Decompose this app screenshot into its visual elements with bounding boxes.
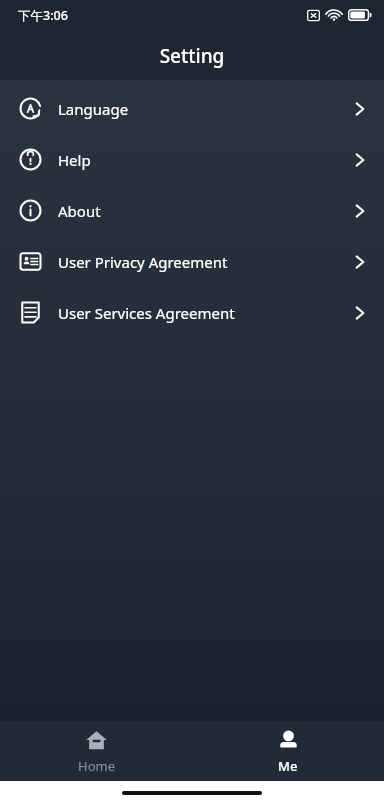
- staticText: User Privacy Agreement: [58, 252, 228, 272]
- staticText: Me: [278, 757, 298, 775]
- button[interactable]: Language: [0, 83, 384, 134]
- other: Me: [277, 729, 300, 752]
- button[interactable]: Help: [0, 134, 384, 185]
- staticText: 下午3:06: [18, 7, 68, 24]
- button[interactable]: User Privacy Agreement: [0, 236, 384, 287]
- button[interactable]: User Services Agreement: [0, 287, 384, 338]
- staticText: Home: [78, 757, 115, 775]
- button[interactable]: Me: [192, 721, 384, 781]
- other: Home: [85, 729, 108, 752]
- staticText: About: [58, 201, 101, 221]
- button[interactable]: About: [0, 185, 384, 236]
- staticText: Setting: [0, 43, 384, 69]
- button[interactable]: Home: [0, 721, 192, 781]
- staticText: Language: [58, 99, 129, 119]
- staticText: User Services Agreement: [58, 303, 235, 323]
- staticText: Help: [58, 150, 91, 170]
